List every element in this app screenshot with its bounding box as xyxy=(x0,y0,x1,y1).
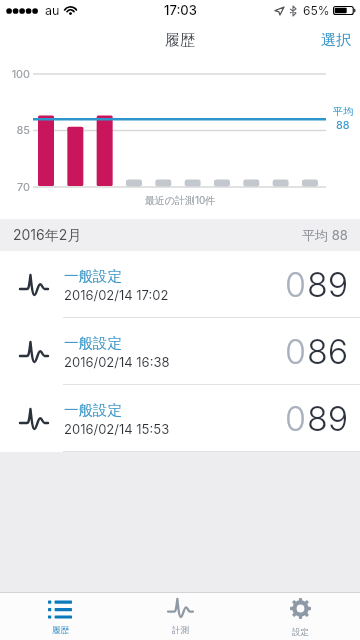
staticText: 平均 88 xyxy=(302,227,348,243)
staticText: 88 xyxy=(336,118,350,131)
staticText: 一般設定 xyxy=(64,401,122,419)
staticText: 最近の計測10件 xyxy=(0,194,360,207)
staticText: 2016/02/14 16:38 xyxy=(64,354,170,370)
staticText: 85 xyxy=(0,123,30,136)
staticText: 0 xyxy=(285,264,307,305)
staticText: 89 xyxy=(307,398,349,439)
staticText: 0 xyxy=(285,331,307,372)
button[interactable]: History xyxy=(0,593,120,640)
button[interactable]: 選択 xyxy=(312,25,360,56)
staticText: 平均 xyxy=(333,105,353,118)
staticText: 65% xyxy=(303,3,330,18)
staticText: 86 xyxy=(307,331,349,372)
button[interactable]: 一般設定 xyxy=(0,318,360,385)
staticText: 履歴 xyxy=(52,625,69,636)
button[interactable]: Settings xyxy=(240,593,360,640)
staticText: 17:03 xyxy=(164,2,197,18)
staticText: 0 xyxy=(285,398,307,439)
button[interactable]: 一般設定 xyxy=(0,251,360,318)
staticText: 2016/02/14 17:02 xyxy=(64,287,169,303)
staticText: 2016年2月 xyxy=(13,226,82,244)
staticText: 70 xyxy=(0,180,30,193)
staticText: 一般設定 xyxy=(64,267,122,285)
staticText: 一般設定 xyxy=(64,334,122,352)
staticText: au xyxy=(45,3,60,18)
staticText: 2016/02/14 15:53 xyxy=(64,421,170,437)
staticText: 計測 xyxy=(172,625,189,636)
button[interactable]: Measure xyxy=(120,593,240,640)
staticText: 設定 xyxy=(292,627,309,638)
button[interactable]: 一般設定 xyxy=(0,385,360,452)
staticText: 100 xyxy=(0,67,30,80)
staticText: 選択 xyxy=(321,31,351,50)
staticText: 89 xyxy=(307,264,349,305)
staticText: 履歴 xyxy=(165,31,195,50)
